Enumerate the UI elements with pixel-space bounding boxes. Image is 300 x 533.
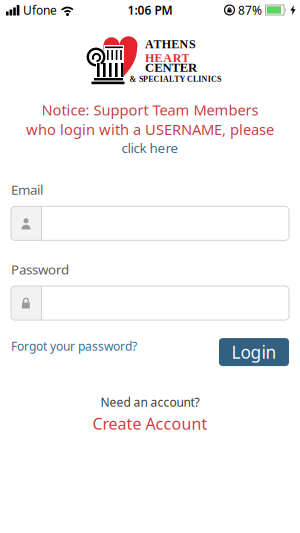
- staticText: 1:06 PM: [127, 2, 172, 18]
- staticText: click here: [121, 139, 178, 157]
- staticText: Notice: Support Team Members: [41, 100, 258, 119]
- staticText: Password: [11, 260, 69, 278]
- staticText: Email: [11, 181, 43, 198]
- button[interactable]: [11, 286, 289, 320]
- button[interactable]: Forgot your password?: [11, 338, 137, 354]
- staticText: who login with a USERNAME, please: [26, 119, 274, 139]
- staticText: Login: [231, 341, 276, 364]
- staticText: HEART: [145, 51, 189, 65]
- staticText: Ufone: [23, 2, 57, 18]
- button[interactable]: [11, 206, 289, 240]
- staticText: CENTER: [145, 60, 197, 74]
- staticText: Need an account?: [100, 394, 199, 410]
- button[interactable]: Login: [219, 338, 289, 366]
- staticText: Create Account: [92, 413, 207, 434]
- staticText: Forgot your password?: [11, 338, 137, 354]
- staticText: ATHENS: [145, 37, 196, 51]
- staticText: & SPECIALTY CLINICS: [129, 74, 221, 83]
- button[interactable]: click here: [121, 139, 178, 157]
- staticText: 87%: [238, 2, 262, 18]
- button[interactable]: Create Account: [92, 413, 207, 434]
